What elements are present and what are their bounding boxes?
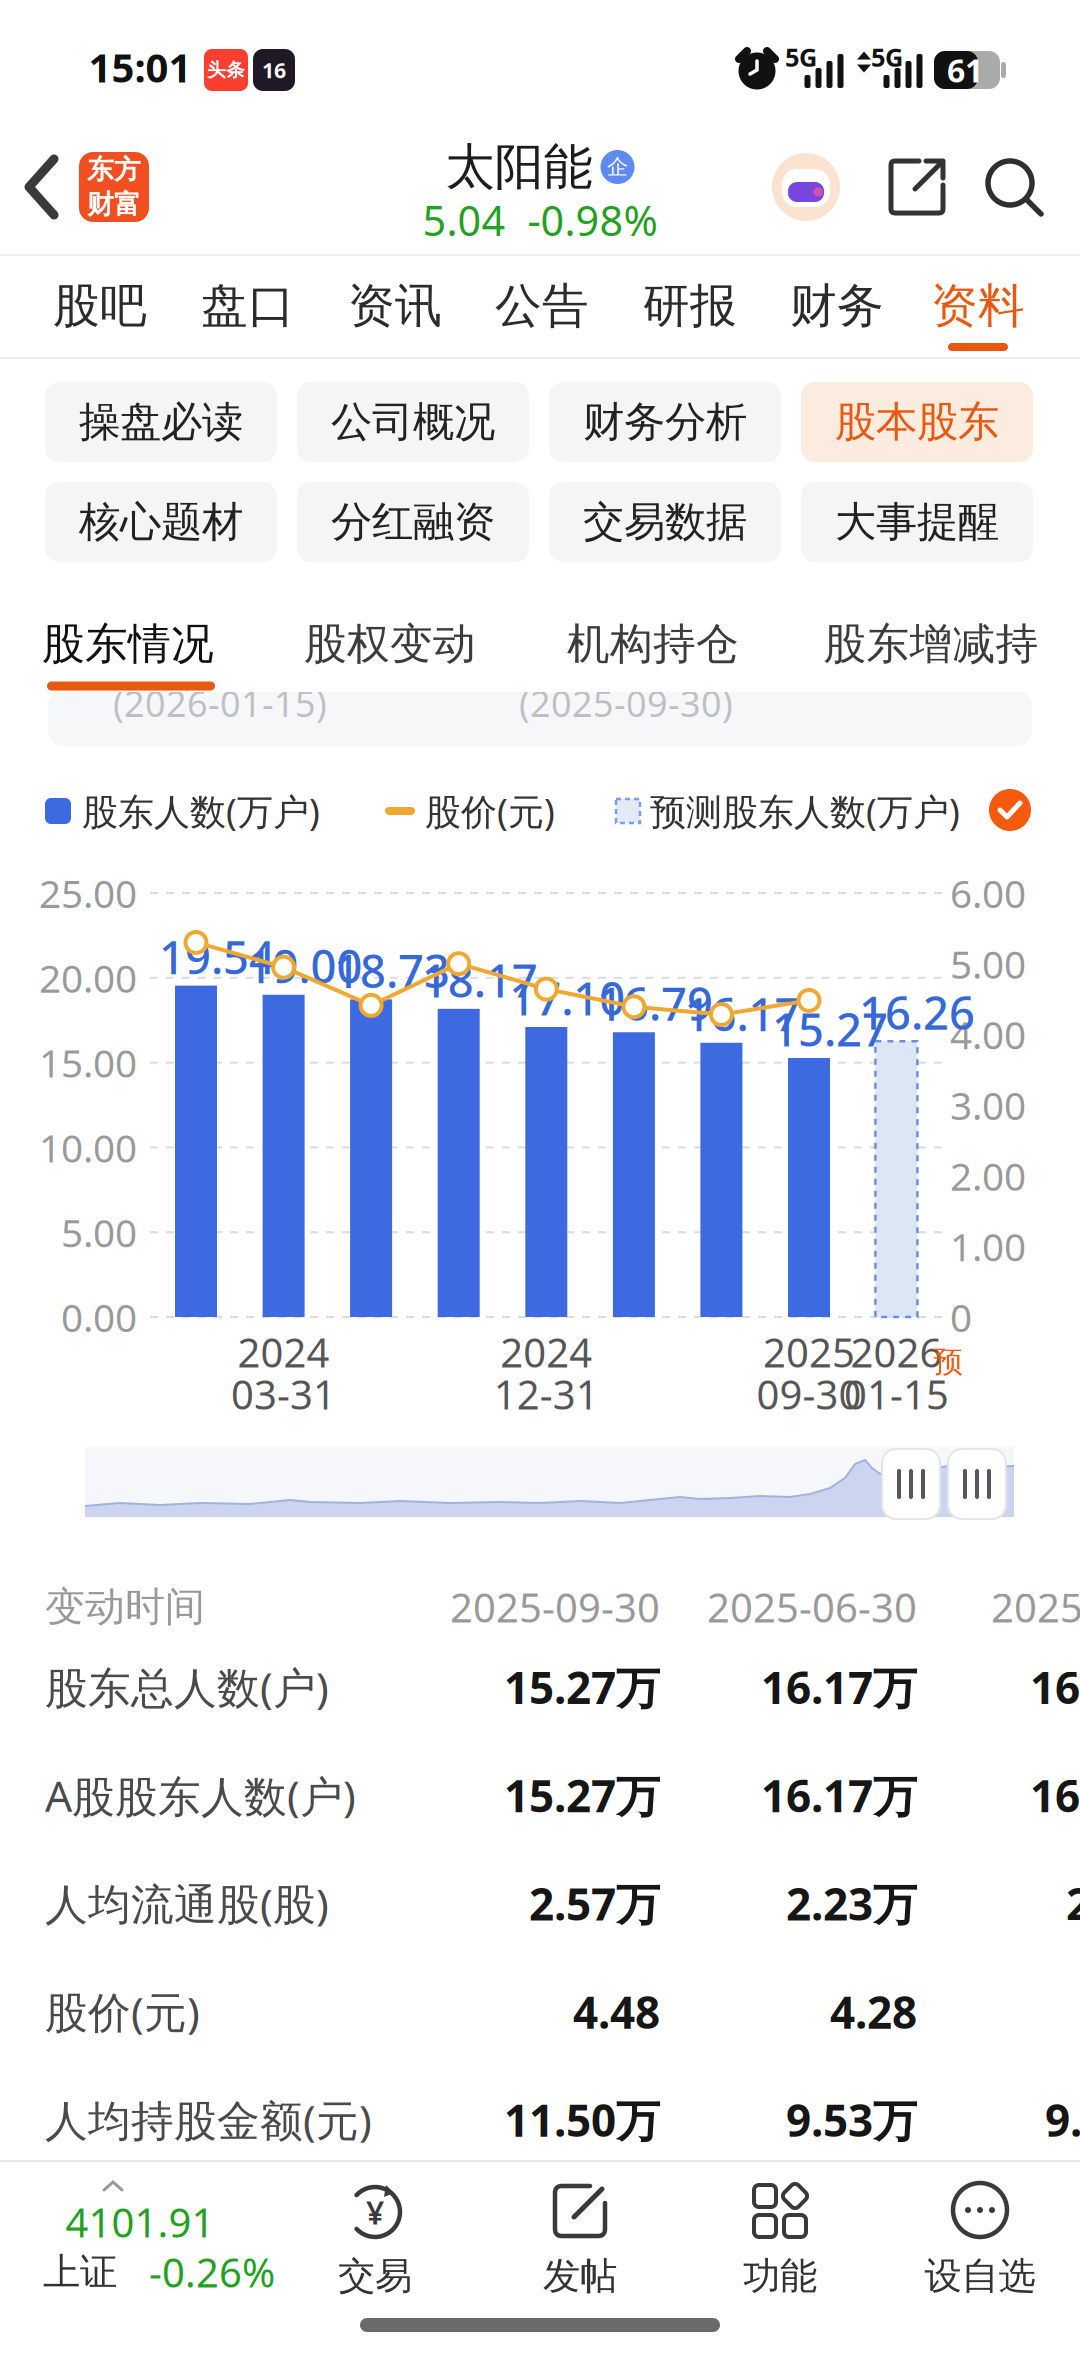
button[interactable]: 股东增减持 [801, 606, 1061, 682]
staticText: 东方 [87, 153, 141, 186]
button[interactable]: Search [985, 158, 1043, 216]
staticText: 股东增减持 [823, 618, 1038, 670]
staticText: 股东人数(万户) [82, 787, 320, 835]
staticText: 财富 [87, 188, 141, 221]
staticText: 财务分析 [583, 397, 747, 447]
staticText: 2.00 [950, 1150, 1026, 1201]
staticText: 2024 [500, 1325, 592, 1378]
button[interactable]: 资讯 [325, 261, 465, 351]
staticText: 09-30 [756, 1367, 861, 1420]
staticText: 发帖 [543, 2253, 617, 2299]
button[interactable]: 操盘必读 [45, 382, 277, 462]
staticText: 上证 [43, 2249, 117, 2295]
button[interactable]: 资料 [908, 261, 1048, 351]
staticText: 10.00 [39, 1122, 137, 1173]
staticText: 公司概况 [331, 397, 495, 447]
staticText: 2.23万 [786, 1874, 917, 1933]
staticText: 18.73 [334, 940, 450, 1000]
button[interactable]: 发帖 [510, 2179, 650, 2299]
staticText: 18.17 [422, 950, 538, 1010]
button[interactable]: 股吧 [30, 261, 170, 351]
staticText: 资料 [931, 277, 1025, 335]
staticText: 预测股东人数(万户) [650, 787, 960, 835]
button[interactable]: Share [889, 159, 945, 215]
staticText: 股价(元) [45, 1983, 200, 2040]
staticText: 预 [933, 1344, 962, 1380]
staticText: 16.17万 [761, 1766, 917, 1824]
button[interactable]: 核心题材 [45, 482, 277, 562]
button[interactable]: 大事提醒 [801, 482, 1033, 562]
staticText: 人均持股金额(元) [45, 2091, 372, 2148]
staticText: 变动时间 [45, 1582, 205, 1631]
button[interactable]: 交易数据 [549, 482, 781, 562]
staticText: -0.26% [149, 2245, 275, 2298]
staticText: 股权变动 [304, 618, 476, 670]
button[interactable]: 机构持仓 [543, 606, 763, 682]
staticText: 财务 [790, 277, 884, 335]
staticText: 16.26 [859, 982, 975, 1042]
staticText: 4101.91 [65, 2195, 214, 2248]
staticText: 5G [871, 40, 903, 74]
staticText: 19.00 [247, 936, 363, 996]
staticText: 16.17万 [761, 1658, 917, 1716]
button[interactable]: Back [27, 157, 57, 217]
button[interactable]: 4101.91 [0, 2180, 290, 2300]
staticText: 2.57万 [529, 1874, 660, 1933]
staticText: 交易数据 [583, 497, 747, 547]
staticText: 9.53万 [786, 2091, 917, 2149]
staticText: 功能 [743, 2253, 817, 2299]
staticText: 4.48 [573, 1982, 660, 2041]
staticText: 交易 [338, 2253, 412, 2299]
staticText: 人均流通股(股) [45, 1875, 329, 1932]
staticText: 17.10 [509, 968, 625, 1028]
button[interactable]: 股权变动 [280, 606, 500, 682]
staticText: 5G [785, 40, 817, 74]
staticText: ¥ [366, 2191, 384, 2233]
button[interactable]: 公告 [472, 261, 612, 351]
staticText: 2025-09-30 [450, 1580, 660, 1633]
button[interactable]: 财务分析 [549, 382, 781, 462]
staticText: 设自选 [924, 2253, 1035, 2299]
button[interactable]: 股东情况 [18, 606, 238, 682]
button[interactable]: 东方财富 [79, 152, 149, 222]
staticText: 16 [262, 56, 286, 84]
staticText: A股股东人数(户) [45, 1767, 356, 1824]
staticText: 公告 [495, 277, 589, 335]
button[interactable]: 分红融资 [297, 482, 529, 562]
button[interactable]: ¥ [305, 2179, 445, 2299]
staticText: 股价(元) [425, 787, 555, 835]
staticText: 操盘必读 [79, 397, 243, 447]
button[interactable]: 设自选 [910, 2179, 1050, 2299]
staticText: 股吧 [53, 277, 147, 335]
staticText: 3.00 [950, 1079, 1026, 1131]
button[interactable]: 公司概况 [297, 382, 529, 462]
button[interactable]: 财务 [767, 261, 907, 351]
staticText: 5.00 [950, 938, 1026, 989]
button[interactable]: 智能助手 [772, 153, 840, 221]
button[interactable]: 盘口 [178, 261, 318, 351]
button[interactable]: 研报 [620, 261, 760, 351]
staticText: 16.17 [684, 984, 800, 1044]
staticText: 01-15 [844, 1367, 949, 1420]
staticText: 9. [1045, 2091, 1080, 2149]
button[interactable]: 股本股东 [801, 382, 1033, 462]
staticText: 研报 [643, 277, 737, 335]
staticText: 2026 [850, 1325, 942, 1378]
staticText: 25.00 [39, 867, 137, 919]
button[interactable]: 区间左把手 [882, 1449, 940, 1519]
staticText: 16. [1030, 1658, 1080, 1716]
button[interactable]: 功能 [710, 2179, 850, 2299]
staticText: 企 [607, 154, 628, 180]
staticText: 4.00 [950, 1009, 1026, 1060]
staticText: 2025 [763, 1325, 855, 1378]
button[interactable]: 确认 [989, 789, 1031, 831]
staticText: 1.00 [950, 1221, 1026, 1272]
staticText: 2 [1066, 1874, 1080, 1933]
staticText: 61 [947, 49, 983, 91]
staticText: 股本股东 [835, 397, 999, 447]
staticText: 6.00 [950, 867, 1026, 919]
staticText: 12-31 [494, 1367, 599, 1420]
staticText: 15.27万 [504, 1658, 660, 1716]
button[interactable]: 区间右把手 [948, 1449, 1006, 1519]
staticText: 20.00 [39, 952, 137, 1003]
